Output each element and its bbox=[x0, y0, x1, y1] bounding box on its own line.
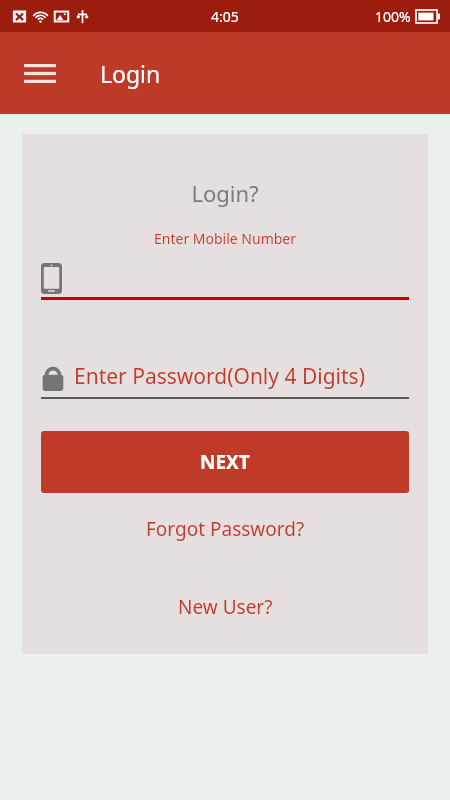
staticText: 100% bbox=[375, 7, 411, 26]
staticText: Login? bbox=[41, 178, 409, 208]
button[interactable]: Forgot Password? bbox=[41, 516, 409, 542]
staticText: Login bbox=[100, 58, 161, 89]
button[interactable] bbox=[41, 259, 409, 297]
staticText: Enter Mobile Number bbox=[41, 229, 409, 248]
staticText: New User? bbox=[178, 594, 273, 620]
staticText: 4:05 bbox=[211, 7, 239, 26]
button[interactable]: Enter Password(Only 4 Digits) bbox=[41, 362, 409, 391]
button[interactable]: NEXT bbox=[41, 431, 409, 493]
staticText: NEXT bbox=[200, 449, 250, 475]
staticText: Enter Password(Only 4 Digits) bbox=[74, 362, 365, 391]
button[interactable]: New User? bbox=[41, 594, 409, 620]
staticText: Forgot Password? bbox=[146, 516, 305, 542]
button[interactable]: Open navigation menu bbox=[18, 51, 62, 95]
